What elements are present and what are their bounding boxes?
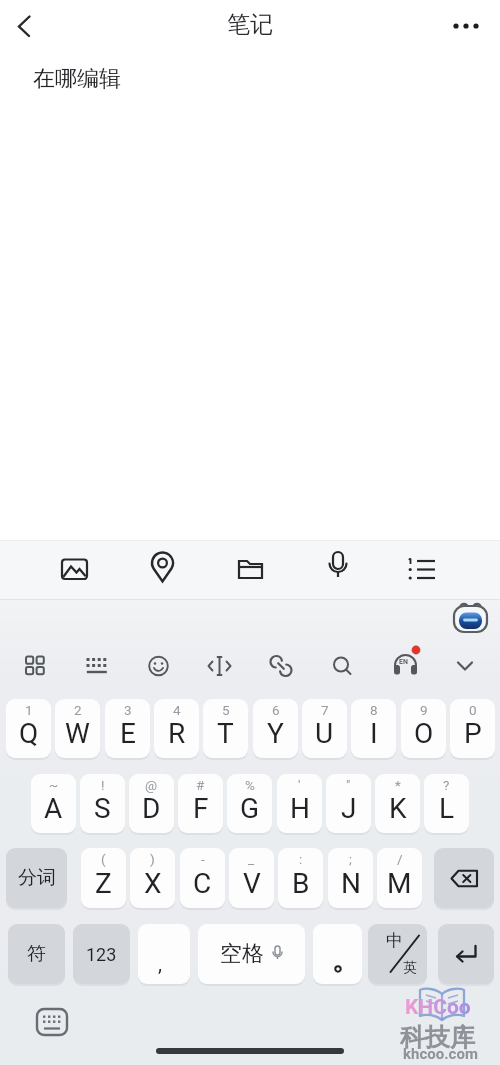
button[interactable]: 3 — [105, 699, 150, 758]
button[interactable]: 中 — [368, 924, 427, 984]
staticText: ' — [298, 777, 301, 793]
button[interactable]: , — [138, 924, 190, 984]
staticText: K — [389, 792, 407, 825]
staticText: 在哪编辑 — [33, 65, 121, 93]
button[interactable] — [148, 550, 177, 586]
staticText: 科技库 — [400, 1022, 475, 1053]
button[interactable] — [236, 556, 265, 584]
staticText: # — [196, 777, 205, 793]
button[interactable] — [454, 656, 476, 676]
staticText: 英 — [403, 959, 417, 976]
button[interactable]: _ — [229, 848, 274, 908]
button[interactable]: / — [377, 848, 422, 908]
button[interactable]: 6 — [253, 699, 298, 758]
button[interactable]: " — [326, 774, 371, 833]
staticText: 分词 — [18, 866, 56, 890]
button[interactable]: ! — [80, 774, 125, 833]
button[interactable]: 2 — [55, 699, 100, 758]
button[interactable] — [323, 550, 353, 586]
staticText: : — [299, 851, 303, 867]
button[interactable]: 1 — [6, 699, 51, 758]
button[interactable]: ~ — [31, 774, 76, 833]
staticText: 中 — [386, 930, 403, 951]
staticText: H — [290, 792, 310, 825]
button[interactable]: % — [227, 774, 272, 833]
staticText: / — [397, 851, 403, 867]
staticText: 空格 — [220, 940, 264, 968]
staticText: ) — [150, 851, 155, 867]
button[interactable]: : — [278, 848, 323, 908]
button[interactable] — [438, 924, 494, 984]
button[interactable]: 符 — [8, 924, 65, 984]
staticText: 8 — [370, 702, 378, 718]
staticText: R — [168, 717, 186, 750]
staticText: V — [243, 867, 261, 900]
staticText: 123 — [86, 944, 117, 965]
staticText: J — [341, 792, 357, 825]
staticText: , — [158, 952, 162, 975]
staticText: N — [341, 867, 361, 900]
staticText: - — [201, 851, 205, 867]
button[interactable]: 9 — [401, 699, 446, 758]
staticText: " — [346, 777, 351, 793]
button[interactable]: 5 — [203, 699, 248, 758]
staticText: 1 — [25, 702, 33, 718]
staticText: Y — [267, 717, 284, 750]
staticText: O — [414, 717, 434, 750]
button[interactable] — [207, 654, 232, 678]
button[interactable]: 4 — [154, 699, 199, 758]
staticText: 3 — [124, 702, 132, 718]
staticText: * — [395, 777, 401, 793]
button[interactable] — [24, 654, 46, 678]
button[interactable] — [391, 642, 423, 680]
staticText: 9 — [420, 702, 428, 718]
staticText: E — [120, 717, 136, 750]
button[interactable]: ) — [130, 848, 175, 908]
staticText: ( — [101, 851, 106, 867]
button[interactable]: @ — [129, 774, 174, 833]
staticText: 5 — [222, 702, 230, 718]
staticText: ; — [349, 851, 352, 867]
staticText: 笔记 — [227, 10, 273, 39]
staticText: 符 — [27, 942, 46, 966]
button[interactable] — [35, 1007, 69, 1037]
button[interactable]: 7 — [302, 699, 347, 758]
button[interactable]: ? — [424, 774, 469, 833]
button[interactable] — [408, 554, 442, 586]
staticText: 6 — [272, 702, 280, 718]
button[interactable]: 0 — [450, 699, 495, 758]
button[interactable]: # — [178, 774, 223, 833]
button[interactable]: 分词 — [6, 848, 67, 908]
button[interactable]: 8 — [351, 699, 396, 758]
button[interactable] — [313, 924, 362, 984]
button[interactable]: * — [375, 774, 420, 833]
staticText: khcoo.com — [403, 1045, 478, 1063]
staticText: 2 — [74, 702, 82, 718]
button[interactable] — [60, 556, 89, 584]
staticText: Q — [19, 717, 39, 750]
button[interactable]: ' — [277, 774, 322, 833]
staticText: I — [370, 717, 378, 750]
button[interactable] — [85, 654, 109, 678]
staticText: M — [387, 867, 412, 900]
staticText: A — [44, 792, 63, 825]
button[interactable] — [434, 848, 494, 908]
staticText: G — [240, 792, 260, 825]
button[interactable] — [331, 654, 354, 678]
staticText: Z — [95, 867, 112, 900]
staticText: L — [439, 792, 455, 825]
staticText: ~ — [49, 777, 59, 793]
button[interactable]: ( — [81, 848, 126, 908]
button[interactable] — [446, 14, 486, 38]
button[interactable]: - — [180, 848, 225, 908]
button[interactable]: 123 — [73, 924, 130, 984]
button[interactable] — [269, 654, 293, 678]
staticText: P — [464, 717, 482, 750]
button[interactable]: ; — [328, 848, 373, 908]
button[interactable]: 空格 — [198, 924, 305, 984]
staticText: S — [94, 792, 111, 825]
staticText: 0 — [469, 702, 477, 718]
button[interactable] — [450, 598, 490, 636]
button[interactable] — [147, 654, 170, 678]
button[interactable] — [8, 12, 36, 40]
